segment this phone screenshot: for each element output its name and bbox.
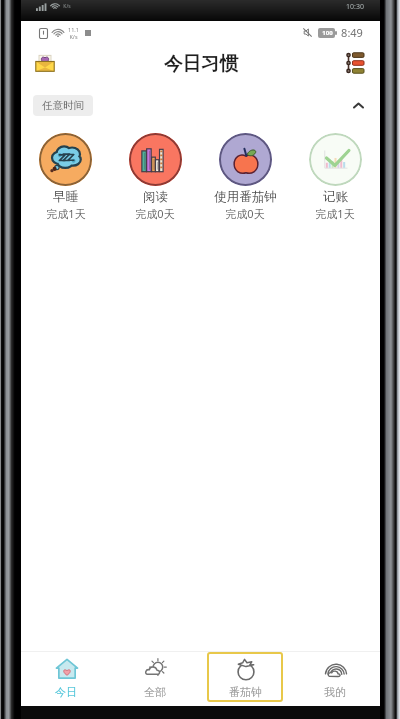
button[interactable]: 今日 [28,652,104,702]
button[interactable]: 我的 [297,652,373,702]
staticText: 今日 [55,685,77,699]
staticText: 使用番茄钟 [214,189,277,205]
staticText: 10:30 [346,2,364,12]
staticText: 8:49 [341,25,363,40]
staticText: 完成0天 [225,206,265,221]
staticText: K/s [69,33,78,40]
button[interactable]: 阅读 [110,133,200,221]
staticText: 完成1天 [46,206,86,221]
button[interactable]: 记账 [290,133,380,221]
staticText: 番茄钟 [229,685,262,699]
button[interactable]: Collapse [347,94,369,116]
button[interactable]: Messages [29,47,61,79]
button[interactable]: 使用番茄钟 [200,133,290,221]
button[interactable]: 早睡 [21,133,110,221]
staticText: 阅读 [143,189,168,205]
button[interactable]: 任意时间 [33,95,93,116]
staticText: 我的 [324,685,346,699]
staticText: 100 [322,29,333,37]
staticText: 完成1天 [315,206,355,221]
staticText: 早睡 [53,189,78,205]
button[interactable]: 全部 [117,652,193,702]
staticText: 全部 [144,685,166,699]
staticText: K/s [63,3,71,10]
button[interactable]: Statistics [339,47,371,79]
staticText: 记账 [323,189,348,205]
button[interactable]: 番茄钟 [207,652,283,702]
staticText: 11.1 [68,26,79,33]
staticText: 今日习惯 [164,52,238,75]
staticText: 完成0天 [135,206,175,221]
staticText: 任意时间 [42,99,84,112]
